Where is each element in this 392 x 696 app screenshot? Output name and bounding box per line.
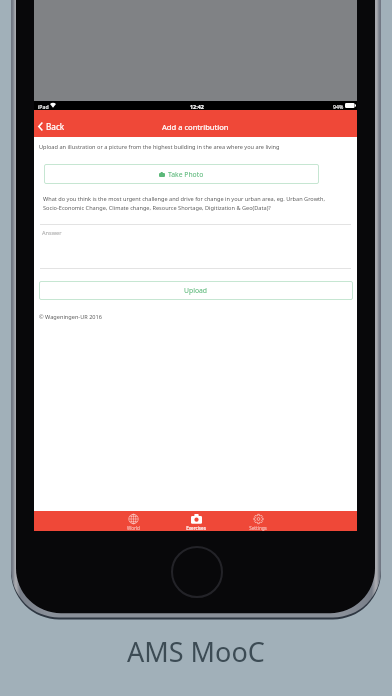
button[interactable]: Exercises (173, 511, 219, 531)
button[interactable]: Back (36, 118, 71, 135)
staticText: What do you think is the most urgent cha… (43, 195, 333, 211)
staticText: Upload (184, 286, 208, 295)
staticText: Upload an illustration or a picture from… (39, 143, 280, 151)
staticText: Add a contribution (162, 122, 229, 132)
button[interactable]: Take Photo (44, 164, 319, 184)
button[interactable]: World (110, 511, 156, 531)
button[interactable]: Settings (235, 511, 281, 531)
staticText: iPad (38, 103, 49, 110)
button[interactable]: Upload (39, 281, 353, 300)
staticText: © Wageningen-UR 2016 (39, 313, 102, 321)
staticText: Back (46, 121, 65, 132)
staticText: Take Photo (168, 170, 204, 179)
staticText: 12:42 (190, 103, 204, 110)
staticText: Exercises (186, 525, 206, 531)
staticText: Answer (42, 229, 62, 237)
staticText: Settings (249, 525, 267, 531)
staticText: 94% (333, 103, 344, 110)
staticText: World (127, 525, 140, 531)
staticText: AMS MooC (127, 633, 265, 670)
button[interactable]: Home (170, 545, 224, 599)
